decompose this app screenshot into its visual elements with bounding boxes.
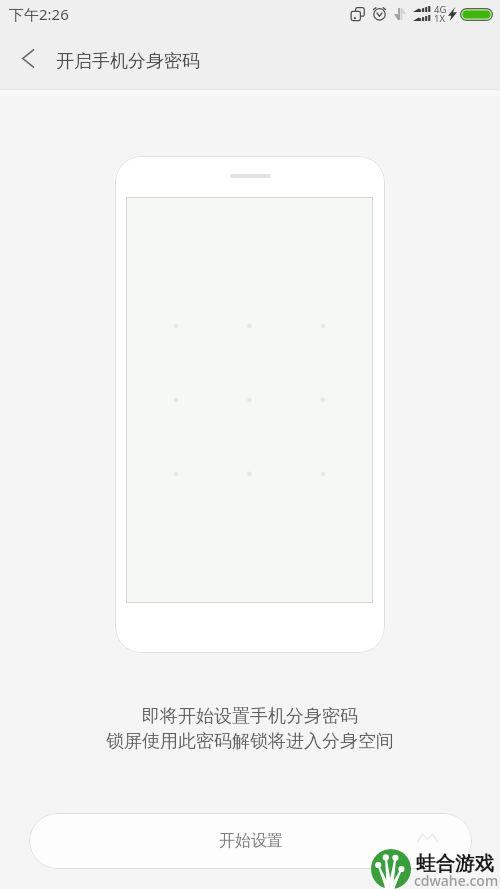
staticText: 即将开始设置手机分身密码 [142,705,358,728]
staticText: 下午2:26 [9,4,69,24]
button[interactable]: Back [7,37,49,79]
staticText: 开始设置 [219,831,283,851]
staticText: 蛙合游戏 [416,851,494,876]
staticText: 锁屏使用此密码解锁将进入分身空间 [106,730,394,753]
button[interactable]: 开始设置 [29,813,472,869]
staticText: 4G [434,3,447,16]
staticText: 1X [434,12,446,25]
staticText: 开启手机分身密码 [56,50,200,73]
staticText: cdwahe.com [414,871,499,889]
